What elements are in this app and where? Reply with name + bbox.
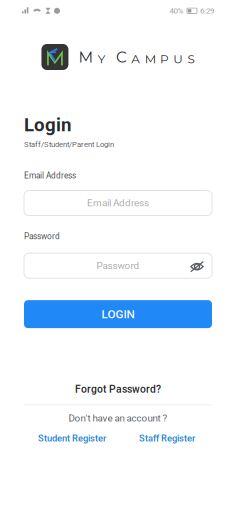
staticText: Y [98,52,106,66]
staticText: S [188,52,195,66]
staticText: Student Register [38,433,106,444]
staticText: 40% [169,6,183,15]
staticText: M [145,52,156,66]
staticText: M [78,48,93,66]
staticText: A [131,52,140,66]
staticText: Password [96,260,139,271]
button[interactable]: Staff Register [139,433,195,444]
staticText: 6:29 [200,6,214,15]
staticText: U [173,52,183,66]
staticText: LOGIN [101,307,134,321]
staticText: Email Address [24,171,76,180]
button[interactable]: LOGIN [24,300,212,328]
staticText: C [116,48,127,66]
staticText: Staff Register [139,433,195,444]
staticText: P [160,52,169,66]
staticText: Login [24,114,71,136]
staticText: Forgot Password? [75,383,161,395]
button[interactable]: Student Register [38,433,106,444]
staticText: Don't have an account ? [68,412,167,424]
staticText: Password [24,231,60,241]
button[interactable]: Show password [184,253,210,278]
staticText: Staff/Student/Parent Login [24,140,114,149]
button[interactable]: Forgot Password? [0,383,236,395]
staticText: Email Address [87,197,149,209]
